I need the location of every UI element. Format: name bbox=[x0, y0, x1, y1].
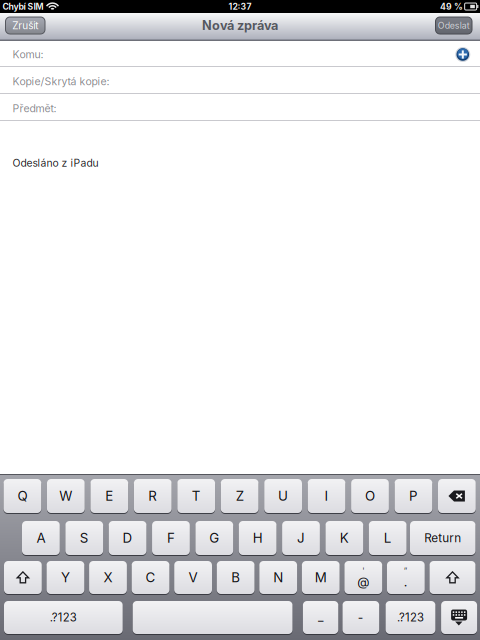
button[interactable]: T bbox=[177, 479, 215, 513]
staticText: L bbox=[384, 530, 392, 546]
staticText: @ bbox=[357, 574, 369, 590]
staticText: Nová zpráva bbox=[202, 18, 278, 33]
staticText: K bbox=[340, 530, 349, 546]
button[interactable]: - bbox=[342, 601, 379, 634]
staticText: Y bbox=[61, 569, 70, 585]
button[interactable]: U bbox=[264, 479, 302, 513]
button[interactable]: F bbox=[152, 521, 190, 555]
button[interactable]: N bbox=[259, 561, 297, 594]
button[interactable]: O bbox=[351, 479, 389, 513]
button[interactable]: Zrušit bbox=[5, 17, 45, 34]
button[interactable]: V bbox=[174, 561, 212, 594]
staticText: A bbox=[36, 530, 45, 546]
staticText: ” bbox=[404, 566, 408, 575]
button[interactable]: Odeslat bbox=[435, 17, 472, 34]
staticText: 49 % bbox=[440, 1, 463, 12]
staticText: F bbox=[167, 530, 175, 546]
staticText: Odeslat bbox=[438, 20, 470, 31]
button[interactable]: Return bbox=[410, 521, 475, 555]
staticText: M bbox=[315, 569, 327, 585]
staticText: Chybí SIM bbox=[3, 1, 44, 12]
button[interactable]: B bbox=[217, 561, 255, 594]
staticText: N bbox=[273, 569, 283, 585]
button[interactable]: Add recipient bbox=[455, 47, 470, 62]
button[interactable]: R bbox=[134, 479, 172, 513]
button[interactable]: M bbox=[302, 561, 340, 594]
staticText: P bbox=[409, 488, 418, 504]
button[interactable]: ” bbox=[387, 561, 425, 594]
staticText: Předmět: bbox=[12, 102, 56, 115]
button[interactable]: C bbox=[132, 561, 169, 594]
button[interactable]: .?123 bbox=[4, 601, 123, 634]
button[interactable]: Q bbox=[3, 479, 41, 513]
button[interactable]: Delete bbox=[438, 479, 476, 513]
staticText: G bbox=[209, 530, 219, 546]
button[interactable]: W bbox=[47, 479, 85, 513]
staticText: .?123 bbox=[397, 611, 424, 624]
button[interactable]: E bbox=[90, 479, 128, 513]
staticText: J bbox=[297, 530, 305, 546]
staticText: D bbox=[123, 530, 133, 546]
button[interactable]: Shift bbox=[4, 561, 42, 594]
staticText: X bbox=[103, 569, 112, 585]
staticText: H bbox=[253, 530, 263, 546]
button[interactable]: I bbox=[308, 479, 345, 513]
button[interactable]: G bbox=[195, 521, 233, 555]
button[interactable]: J bbox=[282, 521, 320, 555]
staticText: B bbox=[231, 569, 240, 585]
button[interactable]: A bbox=[22, 521, 60, 555]
staticText: ' bbox=[362, 566, 364, 575]
button[interactable]: X bbox=[89, 561, 127, 594]
staticText: Z bbox=[236, 488, 244, 504]
button[interactable]: .?123 bbox=[386, 601, 435, 634]
staticText: T bbox=[192, 488, 201, 504]
button[interactable]: Y bbox=[46, 561, 84, 594]
button[interactable]: L bbox=[369, 521, 407, 555]
staticText: .?123 bbox=[50, 611, 77, 624]
staticText: Return bbox=[424, 531, 461, 545]
staticText: Komu: bbox=[12, 48, 43, 61]
staticText: _ bbox=[318, 609, 323, 624]
staticText: R bbox=[148, 488, 157, 504]
staticText: W bbox=[59, 488, 72, 504]
button[interactable]: P bbox=[395, 479, 432, 513]
staticText: Odesláno z iPadu bbox=[12, 157, 98, 169]
button[interactable]: Z bbox=[221, 479, 259, 513]
button[interactable]: Hide keyboard bbox=[441, 601, 477, 634]
button[interactable]: Shift bbox=[429, 561, 475, 594]
staticText: O bbox=[365, 488, 375, 504]
staticText: U bbox=[278, 488, 288, 504]
staticText: . bbox=[404, 574, 408, 590]
staticText: Q bbox=[17, 488, 27, 504]
button[interactable]: H bbox=[239, 521, 277, 555]
staticText: S bbox=[80, 530, 89, 546]
button[interactable]: D bbox=[109, 521, 146, 555]
button[interactable]: _ bbox=[303, 601, 338, 634]
staticText: V bbox=[189, 569, 198, 585]
button[interactable]: S bbox=[65, 521, 103, 555]
button[interactable]: Space bbox=[133, 601, 292, 634]
staticText: 12:37 bbox=[228, 1, 251, 12]
staticText: I bbox=[325, 488, 329, 504]
staticText: Kopie/Skrytá kopie: bbox=[12, 75, 109, 88]
staticText: C bbox=[145, 569, 155, 585]
staticText: Zrušit bbox=[12, 19, 38, 32]
button[interactable]: ' bbox=[344, 561, 382, 594]
button[interactable]: K bbox=[325, 521, 363, 555]
staticText: - bbox=[358, 610, 364, 625]
staticText: E bbox=[105, 488, 113, 504]
